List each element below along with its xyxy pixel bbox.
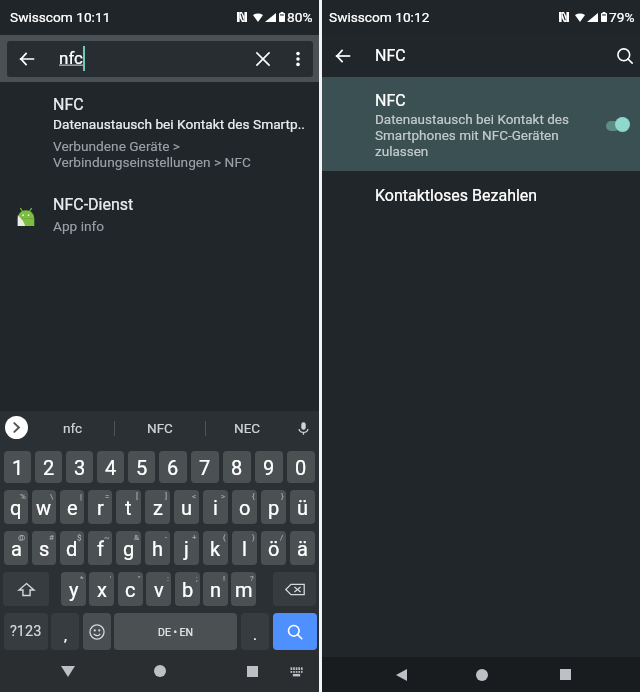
staticText: } — [281, 492, 284, 501]
staticText: NFC-Dienst — [53, 195, 134, 214]
button[interactable]: Shift — [3, 572, 49, 606]
staticText: ( — [223, 533, 226, 542]
button[interactable]: nfc — [33, 411, 113, 445]
button[interactable]: Back — [380, 657, 422, 692]
button[interactable]: NFC — [322, 77, 640, 171]
staticText: nfc — [63, 420, 83, 436]
staticText: : — [167, 574, 169, 583]
staticText: NEC — [234, 420, 261, 436]
button[interactable]: Backspace — [273, 572, 316, 606]
staticText: { — [252, 492, 255, 501]
button[interactable]: r — [88, 490, 112, 524]
staticText: y — [69, 578, 79, 601]
staticText: ? — [250, 574, 254, 583]
button[interactable]: Recent apps — [230, 650, 274, 692]
staticText: p — [268, 496, 280, 519]
staticText: 9 — [263, 456, 275, 479]
button[interactable]: Clear search — [245, 41, 281, 77]
button[interactable]: NFC on — [606, 116, 632, 132]
button[interactable]: Home — [138, 650, 182, 692]
button[interactable]: 0 — [287, 451, 315, 483]
staticText: @ — [18, 533, 26, 542]
button[interactable]: 5 — [128, 451, 155, 483]
button[interactable]: . — [241, 613, 269, 650]
button[interactable]: j — [174, 531, 199, 565]
button[interactable]: Back — [325, 38, 361, 74]
button[interactable]: t — [116, 490, 141, 524]
button[interactable]: Hide keyboard — [46, 650, 90, 692]
button[interactable]: h — [145, 531, 170, 565]
staticText: 0 — [295, 456, 307, 479]
button[interactable]: Back — [9, 41, 45, 77]
button[interactable]: 2 — [35, 451, 62, 483]
button[interactable]: NFC — [116, 411, 204, 445]
button[interactable]: z — [145, 490, 170, 524]
button[interactable]: Kontaktloses Bezahlen — [322, 171, 640, 221]
button[interactable]: 1 — [4, 451, 31, 483]
button[interactable]: ä — [290, 531, 315, 565]
button[interactable]: i — [203, 490, 228, 524]
button[interactable]: Voice input — [287, 411, 319, 445]
staticText: \ — [50, 492, 54, 501]
button[interactable]: q — [4, 490, 28, 524]
button[interactable]: Home — [461, 657, 503, 692]
button[interactable]: u — [174, 490, 199, 524]
button[interactable]: NEC — [207, 411, 287, 445]
button[interactable]: Search — [607, 38, 640, 74]
button[interactable]: w — [32, 490, 56, 524]
button[interactable]: ?123 — [4, 613, 48, 650]
staticText: n — [210, 578, 222, 601]
staticText: [ — [136, 492, 139, 501]
button[interactable]: a — [4, 531, 28, 565]
button[interactable]: g — [116, 531, 141, 565]
button[interactable]: Back — [7, 41, 313, 77]
staticText: NFC — [53, 95, 84, 114]
button[interactable]: 9 — [255, 451, 283, 483]
button[interactable]: Space, DE EN — [114, 613, 237, 650]
staticText: # — [49, 533, 54, 542]
staticText: NFC — [147, 420, 173, 436]
button[interactable]: k — [203, 531, 228, 565]
staticText: e — [67, 496, 78, 519]
button[interactable]: f — [88, 531, 112, 565]
button[interactable]: , — [51, 613, 79, 650]
button[interactable]: 4 — [97, 451, 124, 483]
button[interactable]: Switch keyboard — [278, 650, 314, 692]
staticText: o — [239, 496, 251, 519]
staticText: a — [11, 537, 22, 560]
button[interactable]: ö — [261, 531, 286, 565]
button[interactable]: Recent apps — [544, 657, 586, 692]
staticText: ] — [165, 492, 168, 501]
staticText: 7 — [199, 456, 211, 479]
button[interactable]: e — [60, 490, 84, 524]
button[interactable]: Emoji — [83, 613, 111, 650]
button[interactable]: 7 — [191, 451, 219, 483]
staticText: ä — [297, 537, 308, 560]
staticText: k — [210, 537, 221, 560]
button[interactable]: More options — [283, 41, 313, 77]
staticText: & — [134, 533, 139, 542]
staticText: < — [192, 492, 197, 501]
button[interactable]: ü — [290, 490, 315, 524]
button[interactable]: NFC-Dienst — [0, 179, 319, 244]
button[interactable]: d — [60, 531, 84, 565]
button[interactable]: NFC — [0, 82, 319, 179]
button[interactable]: n — [203, 572, 228, 606]
button[interactable]: 3 — [66, 451, 93, 483]
button[interactable]: Expand suggestions — [5, 416, 28, 439]
button[interactable]: b — [175, 572, 200, 606]
button[interactable]: l — [232, 531, 257, 565]
button[interactable]: Search — [273, 613, 317, 650]
button[interactable]: v — [146, 572, 171, 606]
staticText: nfc — [59, 48, 83, 68]
button[interactable]: 6 — [159, 451, 187, 483]
button[interactable]: 8 — [223, 451, 251, 483]
button[interactable]: s — [32, 531, 56, 565]
staticText: 6 — [167, 456, 179, 479]
button[interactable]: m — [231, 572, 256, 606]
button[interactable]: o — [232, 490, 257, 524]
button[interactable]: x — [89, 572, 114, 606]
button[interactable]: p — [261, 490, 286, 524]
button[interactable]: y — [61, 572, 86, 606]
button[interactable]: c — [118, 572, 143, 606]
